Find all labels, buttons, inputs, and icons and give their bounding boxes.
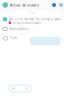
button[interactable]: Message field — [9, 85, 31, 92]
button[interactable]: Este es un mensaje de ejemplo largo — [0, 17, 64, 21]
button[interactable]: Video call — [52, 3, 56, 7]
button[interactable]: Perfil — [0, 36, 64, 40]
staticText: Este es un mensaje de ejemplo largo — [9, 17, 61, 21]
button[interactable]: Respuesta corta aqui — [0, 21, 64, 24]
staticText: Respuesta corta aqui — [13, 21, 41, 24]
button[interactable]: Voice call — [59, 3, 63, 7]
button[interactable]: Fotos y videos — [0, 27, 64, 31]
staticText: Fotos y videos — [9, 27, 28, 31]
staticText: Amor de madre — [10, 2, 39, 8]
button[interactable]: Contact avatar — [2, 2, 8, 8]
staticText: Perfil — [9, 36, 17, 40]
staticText: hoy — [29, 11, 34, 14]
